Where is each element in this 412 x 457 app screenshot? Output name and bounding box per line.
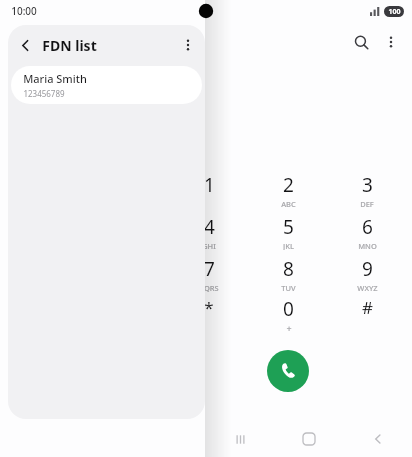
button[interactable]: 5 [254, 214, 322, 250]
staticText: 2 [283, 172, 294, 198]
staticText: 4 [204, 214, 215, 240]
button[interactable]: 4 [175, 214, 243, 250]
staticText: 10:00 [11, 4, 37, 18]
staticText: 8 [283, 256, 294, 282]
button[interactable]: Back [343, 421, 412, 457]
button[interactable]: More options [376, 27, 406, 57]
button[interactable]: Home [274, 421, 343, 457]
button[interactable]: Call [267, 350, 309, 392]
staticText: Maria Smith [23, 71, 87, 86]
staticText: TUV [281, 283, 296, 292]
button[interactable]: 6 [333, 214, 401, 250]
staticText: WXYZ [357, 283, 378, 292]
button[interactable]: Recents [206, 421, 274, 457]
staticText: FDN list [42, 36, 97, 55]
staticText: 7 [204, 256, 215, 282]
staticText: 0 [283, 296, 294, 322]
staticText: DEF [360, 199, 374, 208]
button[interactable]: 2 [254, 172, 322, 208]
button[interactable]: More options [171, 28, 205, 62]
button[interactable]: 3 [333, 172, 401, 208]
staticText: GHI [202, 241, 216, 250]
staticText: 100 [388, 7, 401, 17]
button[interactable]: 1 [175, 172, 243, 208]
staticText: * [204, 296, 214, 319]
button[interactable]: 0 [254, 296, 322, 332]
staticText: 5 [283, 214, 294, 240]
staticText: 6 [362, 214, 373, 240]
button[interactable]: # [333, 296, 401, 332]
staticText: MNO [358, 241, 377, 250]
button[interactable]: Maria Smith [11, 66, 202, 104]
staticText: 3 [362, 172, 373, 198]
staticText: PQRS [199, 283, 219, 292]
staticText: 1 [204, 172, 215, 198]
staticText: 123456789 [23, 88, 65, 99]
button[interactable]: Search [346, 27, 376, 57]
button[interactable]: 9 [333, 256, 401, 292]
button[interactable]: 8 [254, 256, 322, 292]
staticText: # [362, 296, 373, 319]
staticText: 9 [362, 256, 373, 282]
button[interactable]: * [175, 296, 243, 332]
staticText: JKL [283, 241, 294, 250]
button[interactable]: 7 [175, 256, 243, 292]
staticText: ABC [281, 199, 296, 208]
button[interactable]: Back [8, 28, 42, 62]
staticText: + [286, 322, 292, 332]
